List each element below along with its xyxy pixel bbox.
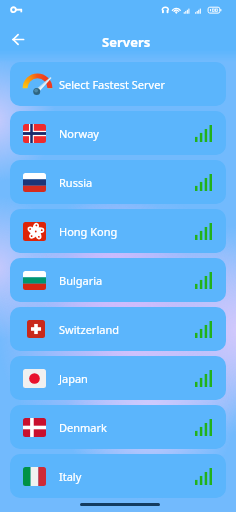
staticText: Denmark	[59, 420, 107, 435]
button[interactable]: Italy	[10, 454, 226, 498]
staticText: Russia	[59, 175, 93, 190]
staticText: Bulgaria	[59, 273, 103, 288]
button[interactable]: Select Fastest Server	[10, 62, 226, 106]
button[interactable]: Bulgaria	[10, 258, 226, 302]
button[interactable]: Japan	[10, 356, 226, 400]
staticText: Hong Kong	[59, 224, 118, 239]
button[interactable]: Norway	[10, 111, 226, 155]
button[interactable]: Back	[4, 25, 32, 53]
staticText: Switzerland	[59, 322, 119, 337]
button[interactable]: Russia	[10, 160, 226, 204]
staticText: Norway	[59, 126, 99, 141]
staticText: Italy	[59, 469, 82, 484]
button[interactable]: Denmark	[10, 405, 226, 449]
button[interactable]: Hong Kong	[10, 209, 226, 253]
button[interactable]: Switzerland	[10, 307, 226, 351]
staticText: Servers	[102, 33, 151, 51]
staticText: Select Fastest Server	[59, 77, 165, 92]
staticText: Japan	[59, 371, 88, 386]
